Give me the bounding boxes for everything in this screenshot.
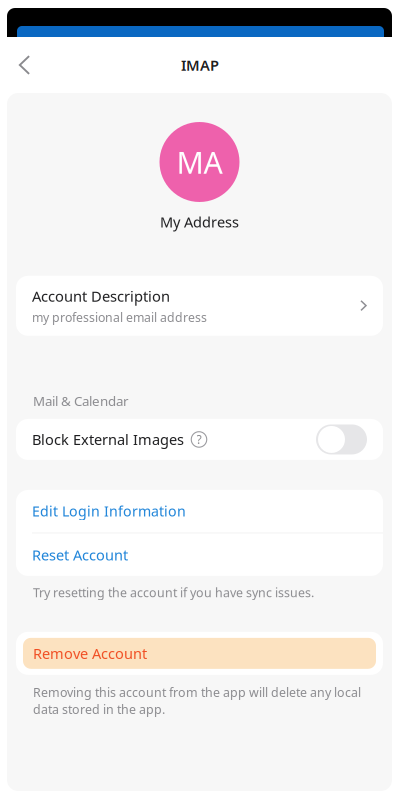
button[interactable]: Remove Account	[16, 632, 383, 675]
staticText: MA	[176, 141, 222, 182]
button[interactable]: Account Description	[16, 276, 383, 336]
button[interactable]: Reset Account	[16, 533, 383, 576]
button[interactable]: Edit Login Information	[16, 489, 383, 532]
staticText: Remove Account	[33, 643, 147, 663]
staticText: Try resetting the account if you have sy…	[33, 584, 314, 601]
button[interactable]: Block External Images	[316, 424, 367, 454]
button[interactable]: Back	[0, 37, 49, 93]
staticText: Edit Login Information	[32, 501, 186, 520]
staticText: Mail & Calendar	[33, 392, 129, 410]
staticText: ?	[196, 431, 201, 448]
staticText: My Address	[160, 212, 239, 232]
staticText: Block External Images	[32, 430, 184, 449]
staticText: IMAP	[181, 55, 219, 75]
staticText: Account Description	[32, 286, 170, 306]
staticText: my professional email address	[32, 309, 207, 326]
staticText: Reset Account	[32, 545, 128, 565]
staticText: Removing this account from the app will …	[33, 684, 361, 718]
